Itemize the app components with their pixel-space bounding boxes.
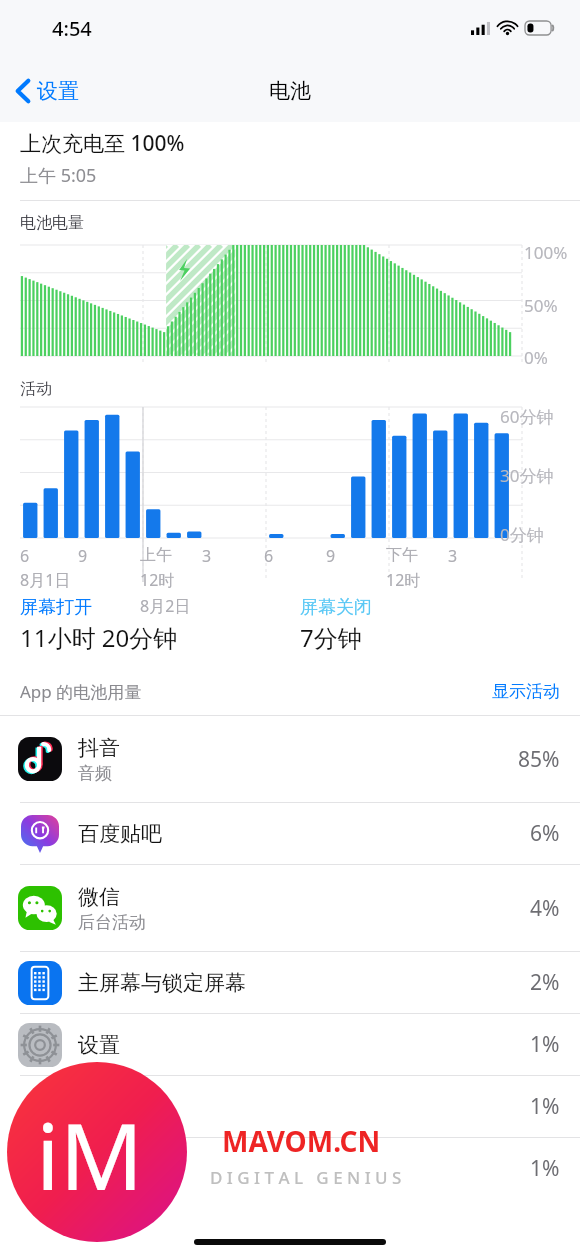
- staticText: 9: [78, 545, 88, 567]
- staticText: 上午: [140, 545, 172, 565]
- staticText: 4:54: [52, 15, 92, 42]
- staticText: 85%: [518, 745, 560, 774]
- staticText: 主屏幕与锁定屏幕: [78, 970, 246, 996]
- staticText: 抖音: [78, 735, 120, 761]
- button[interactable]: 主屏幕与锁定屏幕: [0, 952, 580, 1013]
- button[interactable]: 显示活动: [492, 681, 560, 702]
- staticText: 11小时 20分钟: [20, 621, 178, 654]
- button[interactable]: 闲鱼: [0, 1138, 580, 1199]
- staticText: 屏幕关闭: [300, 596, 372, 619]
- staticText: 1%: [530, 1154, 560, 1183]
- staticText: 下午: [386, 545, 418, 565]
- button[interactable]: 微信: [0, 865, 580, 951]
- staticText: 设置: [37, 78, 79, 104]
- staticText: 100%: [524, 241, 568, 264]
- staticText: 电池: [269, 78, 311, 104]
- staticText: 活动: [20, 379, 52, 399]
- staticText: 6: [264, 545, 274, 567]
- staticText: 1%: [530, 1030, 560, 1059]
- staticText: 1%: [530, 1092, 560, 1121]
- staticText: 2%: [530, 968, 560, 997]
- staticText: 6%: [530, 819, 560, 848]
- staticText: 0%: [524, 346, 548, 369]
- staticText: 8月1日: [20, 569, 71, 591]
- staticText: 50%: [524, 294, 558, 317]
- staticText: 4%: [530, 894, 560, 923]
- staticText: 30分钟: [500, 464, 554, 487]
- staticText: 音频: [78, 763, 112, 784]
- button[interactable]: 设置: [0, 60, 91, 122]
- staticText: 8月2日: [140, 595, 191, 617]
- staticText: 12时: [386, 569, 421, 591]
- staticText: 3: [202, 545, 212, 567]
- staticText: 电池电量: [20, 213, 84, 233]
- button[interactable]: 1%: [0, 1076, 580, 1137]
- button[interactable]: 设置: [0, 1014, 580, 1075]
- staticText: 6: [20, 545, 30, 567]
- staticText: 百度贴吧: [78, 821, 162, 847]
- staticText: 上午 5:05: [20, 163, 97, 188]
- staticText: 3: [448, 545, 458, 567]
- staticText: iM: [36, 1092, 144, 1217]
- staticText: 闲鱼: [78, 1156, 120, 1182]
- staticText: 上次充电至 100%: [20, 129, 185, 158]
- button[interactable]: 抖音: [0, 716, 580, 802]
- staticText: 后台活动: [78, 912, 146, 933]
- staticText: 7分钟: [300, 621, 362, 654]
- staticText: 设置: [78, 1032, 120, 1058]
- staticText: App 的电池用量: [20, 680, 142, 703]
- staticText: 屏幕打开: [20, 596, 92, 619]
- staticText: 显示活动: [492, 681, 560, 702]
- staticText: 9: [326, 545, 336, 567]
- staticText: 12时: [140, 569, 175, 591]
- staticText: 0分钟: [500, 523, 544, 546]
- staticText: D I G I T A L G E N I U S: [210, 1166, 402, 1189]
- staticText: MAVOM.CN: [222, 1122, 381, 1160]
- button[interactable]: 百度贴吧: [0, 803, 580, 864]
- staticText: 60分钟: [500, 405, 554, 428]
- staticText: 微信: [78, 884, 120, 910]
